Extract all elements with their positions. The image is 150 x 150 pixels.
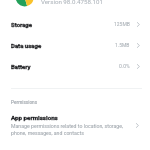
staticText: Battery	[11, 63, 31, 70]
staticText: 1.5MB	[115, 42, 130, 48]
staticText: Manage permissions related to location, …	[11, 123, 124, 136]
staticText: Data usage	[11, 42, 42, 49]
staticText: 0.0%	[119, 63, 130, 69]
button[interactable]: App permissions	[0, 114, 150, 136]
staticText: 125MB	[114, 21, 130, 27]
staticText: Storage	[11, 21, 33, 28]
staticText: App permissions	[11, 114, 58, 121]
staticText: App permissions	[11, 114, 58, 121]
staticText: Permissions	[11, 100, 38, 106]
button[interactable]: Battery	[0, 58, 150, 74]
button[interactable]: Storage	[0, 16, 150, 32]
staticText: Version 98.0.4758.101	[41, 0, 104, 5]
staticText: Data usage	[11, 42, 42, 49]
button[interactable]: Data usage	[0, 37, 150, 53]
staticText: Battery	[11, 63, 31, 70]
staticText: Storage	[11, 21, 33, 28]
